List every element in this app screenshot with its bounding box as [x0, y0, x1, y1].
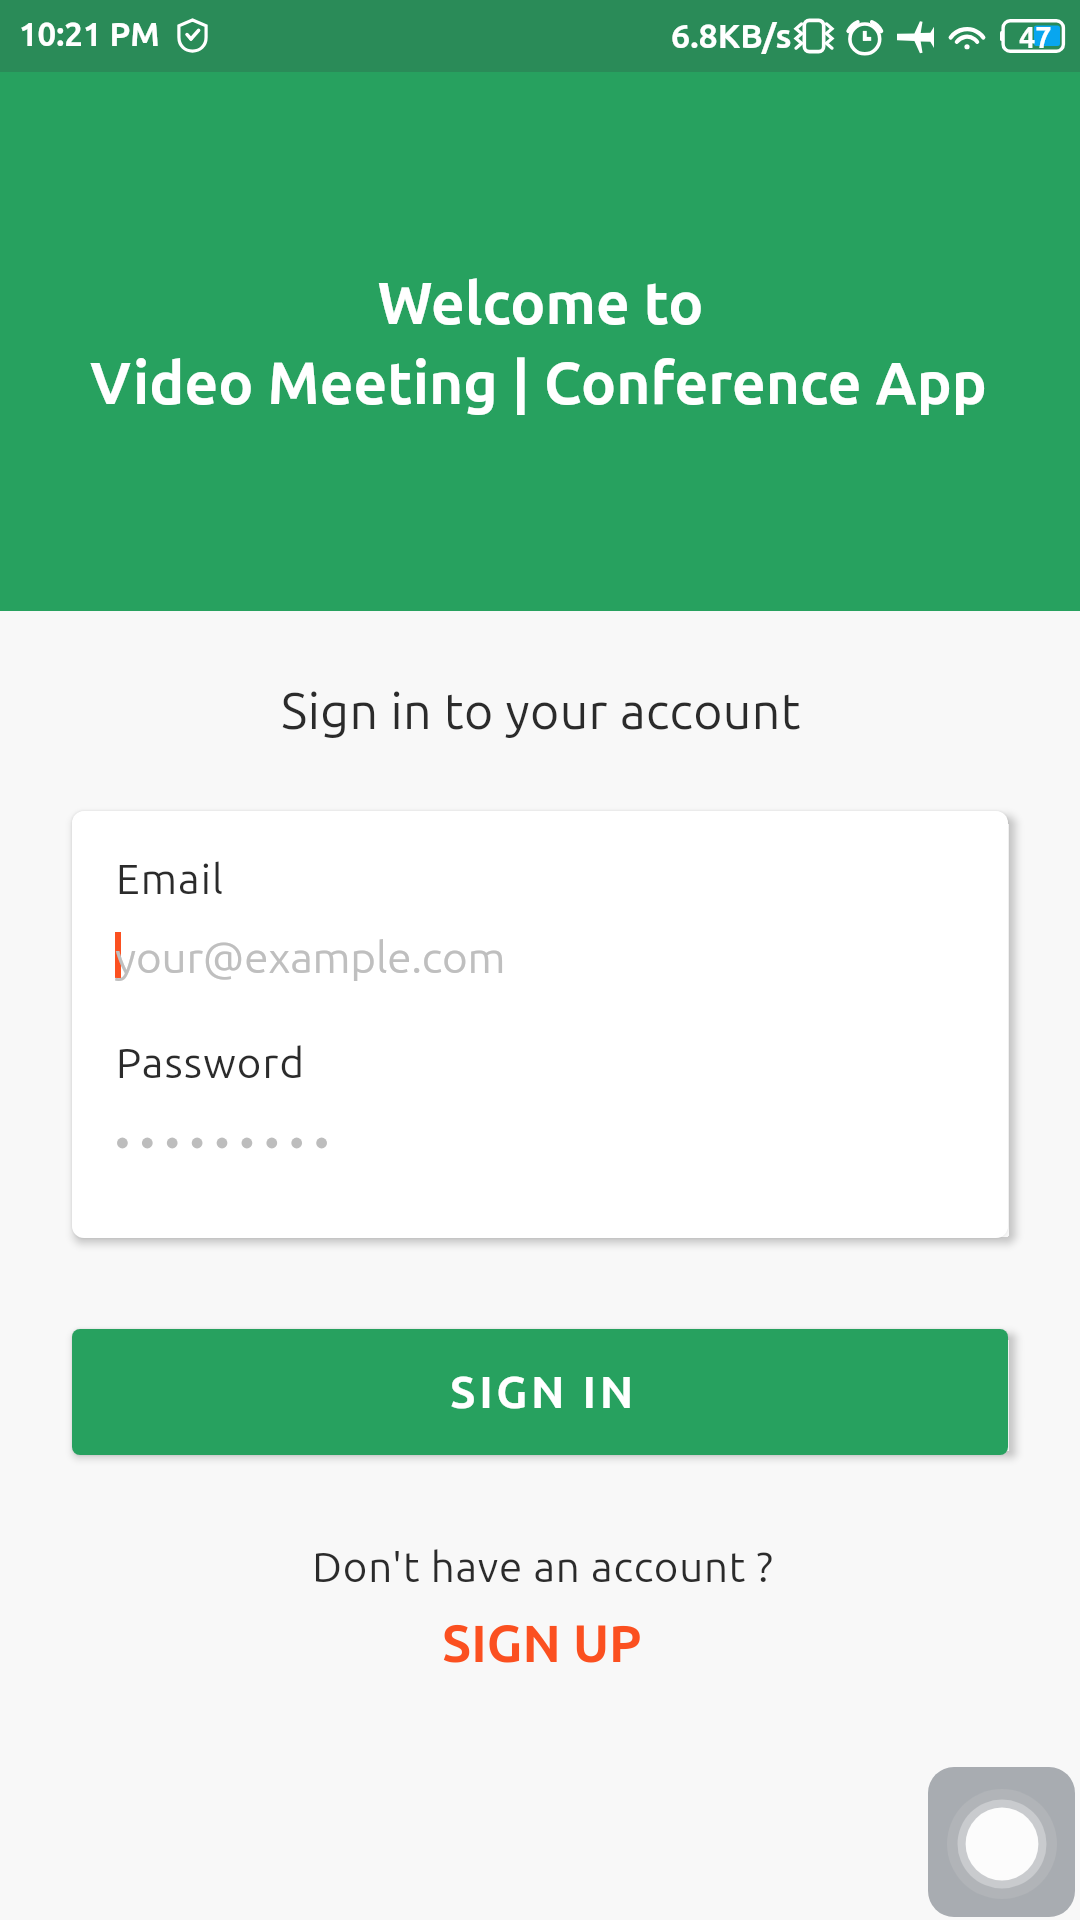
- staticText: SIGN UP: [442, 1614, 642, 1672]
- staticText: 47: [1019, 21, 1052, 53]
- staticText: Welcome to: [377, 269, 704, 335]
- staticText: your@example.com: [115, 932, 506, 981]
- button[interactable]: Assistive touch: [928, 1767, 1075, 1917]
- button[interactable]: SIGN UP: [442, 1614, 642, 1672]
- staticText: Password: [116, 1039, 306, 1086]
- staticText: Sign in to your account: [281, 682, 801, 738]
- staticText: Don't have an account ?: [312, 1543, 774, 1590]
- staticText: Email: [116, 855, 225, 902]
- staticText: Video Meeting | Conference App: [90, 349, 987, 415]
- staticText: SIGN IN: [450, 1366, 637, 1416]
- staticText: 10:21 PM: [19, 15, 160, 52]
- button[interactable]: SIGN IN: [72, 1329, 1008, 1455]
- staticText: 6.8KB/s: [671, 16, 792, 54]
